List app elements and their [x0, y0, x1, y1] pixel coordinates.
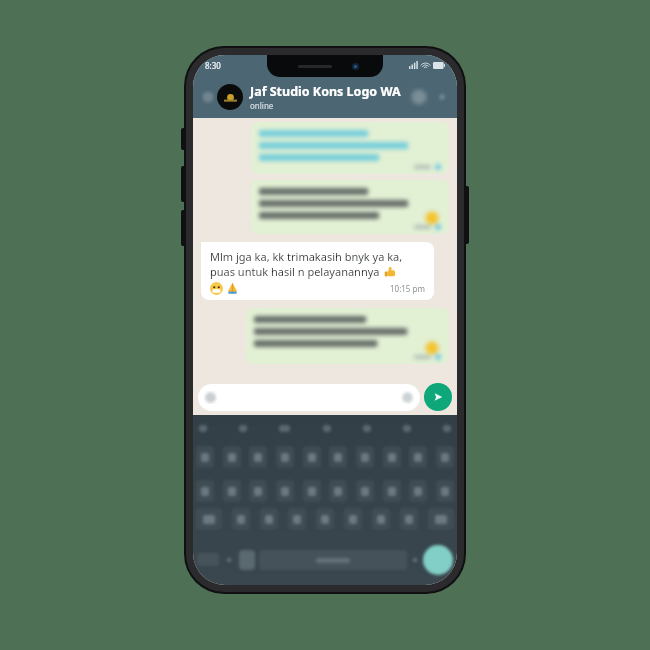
button[interactable]: [413, 558, 417, 562]
button[interactable]: [196, 446, 214, 468]
button[interactable]: Mlm jga ka, kk trimakasih bnyk ya ka,: [201, 242, 434, 300]
button[interactable]: [356, 446, 374, 468]
button[interactable]: [443, 425, 451, 432]
button[interactable]: [259, 550, 407, 570]
button[interactable]: More options: [435, 90, 449, 104]
staticText: puas untuk hasil n pelayanannya: [210, 264, 380, 279]
staticText: Mlm jga ka, kk trimakasih bnyk ya ka,: [210, 249, 403, 264]
button[interactable]: [436, 480, 454, 502]
button[interactable]: [428, 508, 454, 530]
button[interactable]: Voice input: [423, 545, 453, 575]
button[interactable]: [279, 425, 290, 432]
button[interactable]: [199, 425, 207, 432]
button[interactable]: [239, 550, 255, 570]
button[interactable]: [251, 180, 449, 234]
button[interactable]: [303, 446, 321, 468]
button[interactable]: [436, 446, 454, 468]
button[interactable]: [316, 508, 334, 530]
button[interactable]: [303, 480, 321, 502]
button[interactable]: [196, 508, 222, 530]
button[interactable]: [196, 480, 214, 502]
button[interactable]: [251, 122, 449, 174]
button[interactable]: [223, 480, 241, 502]
button[interactable]: [239, 425, 247, 432]
button[interactable]: [249, 446, 267, 468]
button[interactable]: Send: [424, 383, 452, 411]
button[interactable]: Video call: [409, 87, 429, 107]
button[interactable]: [246, 308, 449, 364]
button[interactable]: Back: [201, 90, 215, 104]
button[interactable]: [372, 508, 390, 530]
button[interactable]: [403, 425, 411, 432]
staticText: 8:30: [205, 60, 221, 71]
button[interactable]: [400, 508, 418, 530]
button[interactable]: [260, 508, 278, 530]
button[interactable]: [344, 508, 362, 530]
button[interactable]: Jaf Studio Kons Logo WA: [250, 83, 409, 111]
button[interactable]: [383, 480, 401, 502]
staticText: 10:15 pm: [390, 283, 425, 294]
button[interactable]: [276, 480, 294, 502]
button[interactable]: [409, 446, 427, 468]
button[interactable]: [227, 558, 231, 562]
button[interactable]: [383, 446, 401, 468]
button[interactable]: [249, 480, 267, 502]
staticText: Jaf Studio Kons Logo WA: [250, 83, 401, 100]
button[interactable]: [288, 508, 306, 530]
button[interactable]: [223, 446, 241, 468]
button[interactable]: [232, 508, 250, 530]
button[interactable]: [409, 480, 427, 502]
button[interactable]: [276, 446, 294, 468]
button[interactable]: [356, 480, 374, 502]
button[interactable]: [198, 384, 420, 411]
button[interactable]: [323, 425, 331, 432]
button[interactable]: [329, 480, 347, 502]
button[interactable]: [329, 446, 347, 468]
button[interactable]: [363, 425, 371, 432]
staticText: online: [250, 100, 274, 111]
button[interactable]: Profile photo: [217, 84, 243, 110]
